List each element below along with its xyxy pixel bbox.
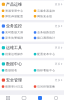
staticText: 权限审计日志 — [5, 85, 23, 88]
button[interactable]: 更多 — [55, 78, 62, 82]
button[interactable]: 异常告警规则 — [0, 35, 32, 41]
staticText: 安全管理 — [6, 78, 22, 82]
button[interactable]: 更多 — [55, 62, 62, 66]
button[interactable]: 批量运维操作 — [0, 51, 32, 57]
staticText: 云服务器监控 — [37, 9, 55, 12]
button[interactable]: 我的 — [48, 96, 64, 100]
button[interactable]: 更多 — [55, 46, 62, 49]
staticText: 数据报表 — [5, 69, 17, 72]
staticText: 接口调用统计 — [37, 36, 55, 40]
staticText: 网络安全组 — [37, 15, 52, 18]
staticText: 配置发布中心 — [37, 52, 55, 56]
button[interactable]: 业务链路追踪 — [32, 30, 64, 35]
staticText: 产品运维 — [6, 2, 22, 7]
staticText: 指标看板中心 — [37, 69, 55, 72]
staticText: 运维工具 — [6, 45, 22, 50]
button[interactable]: 工作台 — [0, 96, 16, 100]
button[interactable]: 网络安全组 — [32, 13, 64, 19]
button[interactable]: 实时数据大屏 — [0, 30, 32, 35]
staticText: 数据中心 — [6, 61, 22, 66]
staticText: 更多 — [55, 78, 61, 82]
button[interactable]: 配置发布中心 — [32, 51, 64, 57]
button[interactable]: 指标看板中心 — [32, 68, 64, 73]
button[interactable]: 云服务器监控 — [32, 8, 64, 13]
button[interactable]: 资源管理中心 — [0, 8, 32, 13]
staticText: 业务监控 — [6, 23, 22, 28]
button[interactable]: 消息 — [16, 96, 32, 100]
staticText: 更多 — [55, 3, 61, 6]
staticText: 更多 — [55, 62, 61, 66]
staticText: 弹性伸缩配置 — [5, 15, 23, 18]
staticText: 资源管理中心 — [5, 9, 23, 12]
button[interactable]: 权限审计日志 — [0, 84, 32, 89]
staticText: 业务链路追踪 — [37, 31, 55, 34]
button[interactable]: 访问控制策略 — [32, 84, 64, 89]
staticText: 异常告警规则 — [5, 36, 23, 40]
staticText: 更多 — [55, 46, 61, 49]
button[interactable]: 更多 — [55, 24, 62, 28]
button[interactable]: 数据报表 — [0, 68, 32, 73]
button[interactable]: 更多 — [55, 3, 62, 6]
button[interactable]: 弹性伸缩配置 — [0, 13, 32, 19]
staticText: 访问控制策略 — [37, 85, 55, 88]
staticText: 更多 — [55, 24, 61, 28]
staticText: 实时数据大屏 — [5, 31, 23, 34]
button[interactable]: 接口调用统计 — [32, 35, 64, 41]
staticText: 批量运维操作 — [5, 52, 23, 56]
button[interactable]: 应用 — [32, 96, 48, 100]
